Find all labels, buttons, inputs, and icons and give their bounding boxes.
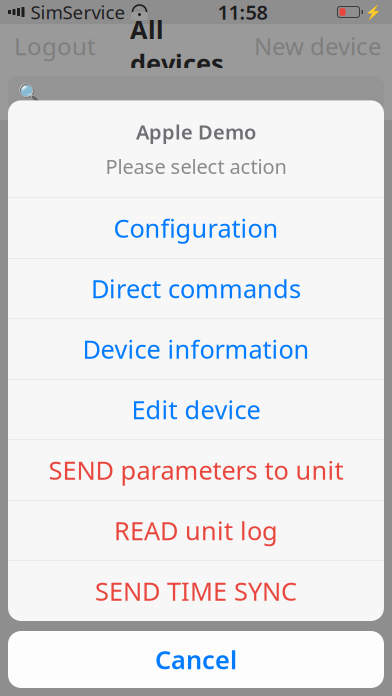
staticText: All devices — [130, 12, 224, 80]
staticText: SEND parameters to unit — [48, 453, 343, 487]
button[interactable]: Direct commands — [8, 258, 384, 318]
button[interactable]: SEND parameters to unit — [8, 440, 384, 500]
staticText: READ unit log — [114, 514, 278, 547]
staticText: Device information — [82, 332, 309, 366]
staticText: SimService — [30, 0, 125, 24]
staticText: Direct commands — [91, 272, 301, 305]
button[interactable]: Cancel — [8, 631, 384, 688]
button[interactable]: SEND TIME SYNC — [8, 561, 384, 621]
staticText: Apple Demo — [136, 118, 256, 145]
button[interactable]: New device — [244, 24, 392, 68]
button[interactable]: Edit device — [8, 379, 384, 439]
staticText: 11:58 — [217, 0, 267, 25]
staticText: 🔍 — [18, 83, 41, 105]
staticText: New device — [254, 30, 382, 62]
button[interactable]: Device information — [8, 319, 384, 379]
staticText: SEND TIME SYNC — [95, 574, 297, 608]
staticText: Logout — [14, 30, 96, 62]
button[interactable]: READ unit log — [8, 500, 384, 560]
staticText: ⚡ — [365, 4, 382, 20]
staticText: Cancel — [155, 643, 237, 676]
button[interactable]: Configuration — [8, 198, 384, 258]
staticText: Configuration — [113, 211, 278, 245]
staticText: Please select action — [105, 153, 286, 179]
button[interactable]: Logout — [0, 24, 110, 68]
staticText: Edit device — [131, 393, 260, 426]
